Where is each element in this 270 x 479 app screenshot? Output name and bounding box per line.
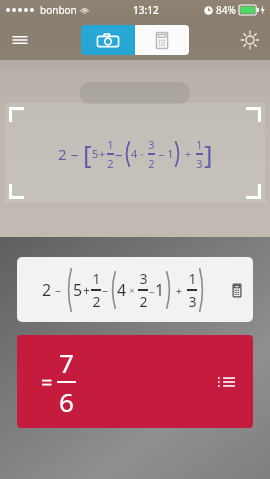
button[interactable]: 2 bbox=[17, 257, 253, 322]
staticText: ] bbox=[204, 136, 213, 171]
staticText: + bbox=[99, 146, 106, 161]
staticText: 2 bbox=[148, 156, 155, 171]
staticText: 2 bbox=[42, 279, 52, 301]
staticText: 1 bbox=[92, 269, 101, 288]
staticText: 7 bbox=[59, 345, 74, 380]
staticText: + bbox=[182, 146, 195, 161]
staticText: 2 bbox=[139, 292, 148, 311]
staticText: [ bbox=[83, 136, 92, 171]
staticText: – bbox=[149, 283, 155, 298]
button[interactable]: Flash bbox=[230, 20, 270, 60]
staticText: 5 bbox=[73, 279, 83, 301]
staticText: 1 bbox=[155, 279, 165, 301]
staticText: – bbox=[102, 282, 109, 298]
button[interactable]: Open calculator bbox=[227, 280, 247, 300]
staticText: – 1 bbox=[156, 146, 174, 161]
staticText: bonbon bbox=[40, 3, 77, 17]
staticText: 3 bbox=[148, 137, 155, 152]
staticText: + bbox=[173, 283, 186, 298]
button[interactable]: Show steps bbox=[213, 369, 239, 395]
staticText: · bbox=[138, 146, 147, 161]
staticText: – bbox=[52, 282, 65, 298]
staticText: 3 bbox=[196, 156, 203, 171]
staticText: 13:12 bbox=[133, 3, 159, 17]
staticText: × bbox=[127, 284, 137, 296]
staticText: 1 bbox=[196, 137, 203, 152]
staticText: – bbox=[115, 144, 123, 164]
staticText: 2 bbox=[92, 292, 101, 311]
staticText: 4 bbox=[131, 146, 138, 161]
staticText: = bbox=[41, 369, 53, 396]
staticText: – bbox=[67, 144, 83, 164]
button[interactable]: Calculator mode bbox=[135, 25, 189, 55]
staticText: 1 bbox=[188, 269, 197, 288]
staticText: 5 bbox=[92, 146, 99, 161]
staticText: 3 bbox=[188, 292, 197, 311]
staticText: 6 bbox=[59, 384, 74, 419]
staticText: 2 bbox=[58, 144, 67, 164]
staticText: 3 bbox=[139, 269, 148, 288]
button[interactable]: Menu bbox=[0, 20, 40, 60]
staticText: 4 bbox=[117, 279, 127, 301]
staticText: + bbox=[83, 282, 90, 298]
staticText: 84% bbox=[216, 3, 236, 17]
button[interactable]: = bbox=[17, 335, 253, 428]
button[interactable]: Camera mode bbox=[81, 25, 135, 55]
staticText: 1 bbox=[107, 137, 114, 152]
staticText: 2 bbox=[107, 156, 114, 171]
